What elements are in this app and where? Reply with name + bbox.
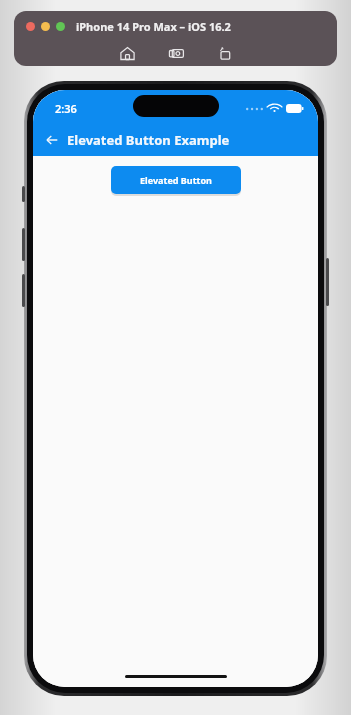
button[interactable]: Back — [40, 128, 64, 152]
staticText: Elevated Button Example — [67, 131, 230, 149]
staticText: Elevated Button — [140, 174, 212, 186]
staticText: iPhone 14 Pro Max – iOS 16.2 — [76, 19, 231, 34]
button[interactable]: Window control — [26, 22, 35, 31]
button[interactable]: Elevated Button — [111, 166, 241, 194]
button[interactable]: Screenshot — [165, 42, 187, 64]
button[interactable]: Record screen — [214, 42, 236, 64]
button[interactable]: Window control — [56, 22, 65, 31]
staticText: 2:36 — [55, 101, 77, 116]
button[interactable]: Window control — [41, 22, 50, 31]
button[interactable]: Home — [116, 42, 138, 64]
